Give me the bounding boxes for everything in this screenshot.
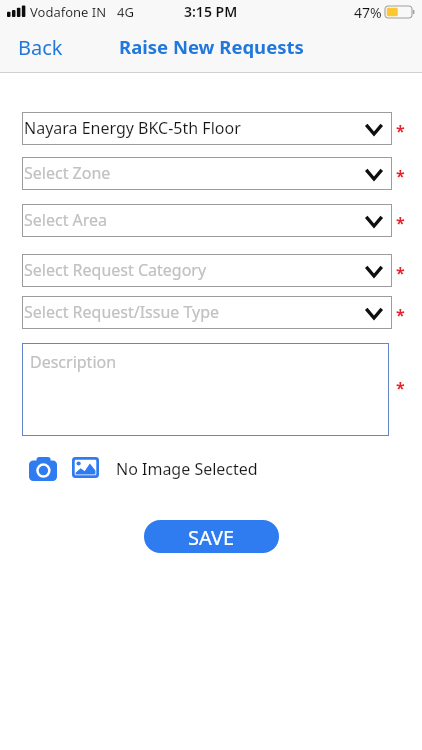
button[interactable]: Select Request/Issue Type xyxy=(22,296,392,329)
button[interactable]: Select Area xyxy=(22,204,392,237)
staticText: 47% xyxy=(354,3,382,22)
staticText: Select Zone xyxy=(24,162,111,184)
staticText: Nayara Energy BKC-5th Floor xyxy=(24,117,241,139)
staticText: Raise New Requests xyxy=(119,34,304,59)
staticText: Back xyxy=(18,34,63,61)
staticText: Vodafone IN xyxy=(30,3,107,21)
button[interactable]: Pick image from gallery xyxy=(72,457,99,478)
button[interactable]: Description xyxy=(22,343,389,436)
staticText: * xyxy=(396,212,405,234)
staticText: Select Request/Issue Type xyxy=(24,301,220,323)
button[interactable]: Back xyxy=(10,29,71,66)
staticText: * xyxy=(396,262,405,284)
button[interactable]: Select Request Category xyxy=(22,254,392,287)
button[interactable]: Nayara Energy BKC-5th Floor xyxy=(22,112,392,145)
staticText: * xyxy=(396,120,405,142)
button[interactable]: Take photo xyxy=(29,457,57,481)
button[interactable]: Select Zone xyxy=(22,157,392,190)
staticText: 4G xyxy=(117,3,134,21)
staticText: No Image Selected xyxy=(116,458,258,480)
staticText: * xyxy=(396,377,405,399)
staticText: * xyxy=(396,165,405,187)
button[interactable]: SAVE xyxy=(144,520,279,553)
staticText: Select Request Category xyxy=(24,259,207,281)
staticText: 3:15 PM xyxy=(184,2,238,21)
staticText: * xyxy=(396,304,405,326)
staticText: Select Area xyxy=(24,209,108,231)
staticText: SAVE xyxy=(188,524,235,551)
staticText: Description xyxy=(30,351,117,373)
